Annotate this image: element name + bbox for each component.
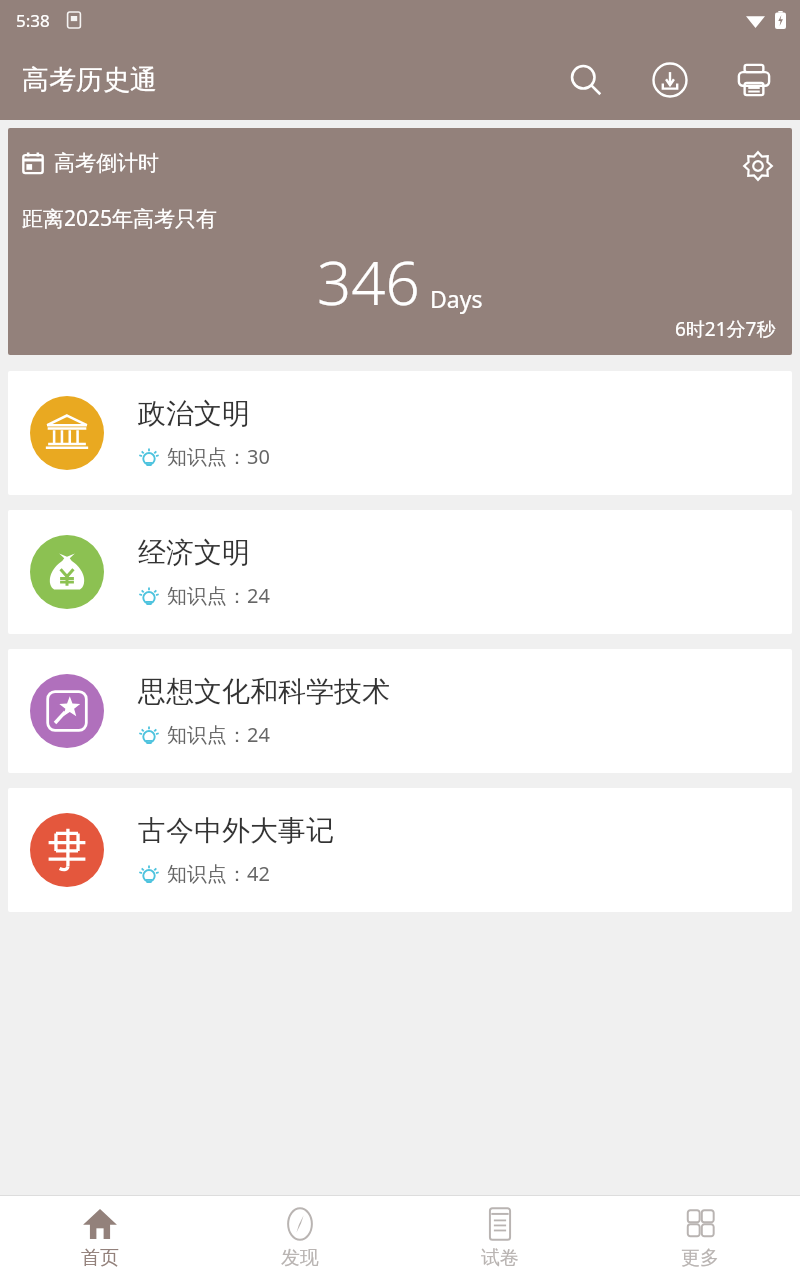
staticText: 知识点：42: [167, 860, 270, 887]
staticText: 知识点：30: [167, 443, 270, 470]
staticText: 高考倒计时: [54, 150, 159, 176]
button[interactable]: 古今中外大事记: [8, 788, 792, 912]
button[interactable]: 思想文化和科学技术: [8, 649, 792, 773]
button[interactable]: 试卷: [400, 1196, 600, 1280]
staticText: 知识点：24: [167, 582, 270, 609]
button[interactable]: 更多: [600, 1196, 800, 1280]
staticText: 政治文明: [138, 396, 250, 431]
staticText: 高考历史通: [22, 63, 157, 97]
button[interactable]: 政治文明: [8, 371, 792, 495]
staticText: 经济文明: [138, 535, 250, 570]
button[interactable]: 经济文明: [8, 510, 792, 634]
button[interactable]: Print: [726, 52, 782, 108]
staticText: 古今中外大事记: [138, 813, 334, 848]
staticText: 距离2025年高考只有: [22, 204, 218, 233]
staticText: 5:38: [16, 9, 50, 32]
staticText: Days: [430, 283, 483, 314]
button[interactable]: Settings: [738, 146, 778, 186]
staticText: 6时21分7秒: [675, 316, 776, 342]
staticText: 试卷: [481, 1246, 519, 1270]
button[interactable]: 发现: [200, 1196, 400, 1280]
button[interactable]: Search: [558, 52, 614, 108]
staticText: 知识点：24: [167, 721, 270, 748]
staticText: 发现: [281, 1246, 319, 1270]
staticText: 346: [317, 241, 420, 323]
staticText: 更多: [681, 1246, 719, 1270]
staticText: 思想文化和科学技术: [138, 674, 390, 709]
button[interactable]: Download: [642, 52, 698, 108]
staticText: 首页: [81, 1246, 119, 1270]
button[interactable]: 高考倒计时: [8, 128, 792, 355]
button[interactable]: 首页: [0, 1196, 200, 1280]
